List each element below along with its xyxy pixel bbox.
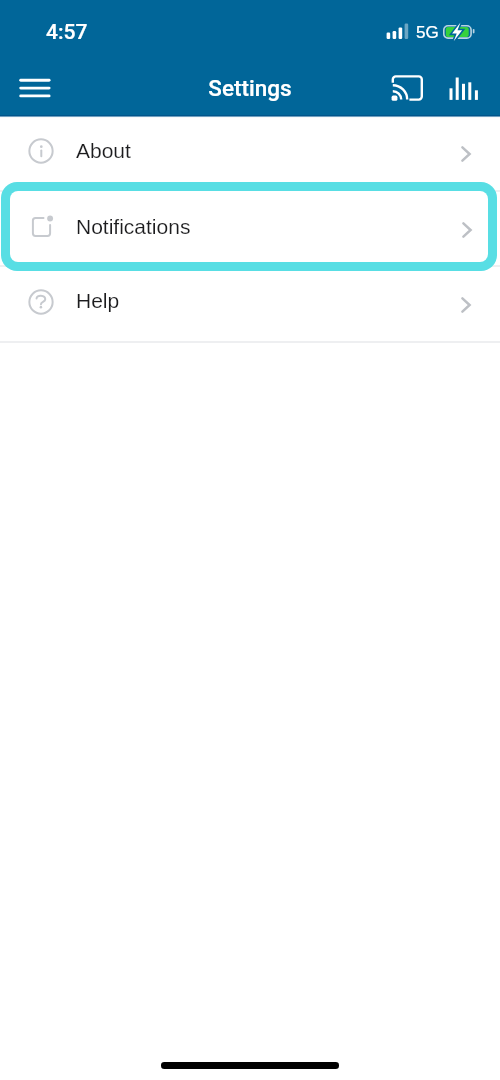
staticText: Notifications bbox=[76, 215, 191, 238]
button[interactable]: About bbox=[0, 116, 500, 192]
staticText: Help bbox=[76, 289, 120, 312]
button[interactable]: Audio levels bbox=[442, 70, 485, 106]
staticText: Settings bbox=[0, 75, 500, 101]
staticText: 5G bbox=[416, 23, 439, 42]
button[interactable]: Cast to device bbox=[384, 68, 428, 108]
staticText: About bbox=[76, 139, 131, 162]
staticText: 4:57 bbox=[46, 20, 88, 45]
button[interactable]: Notifications bbox=[0, 191, 500, 267]
button[interactable]: Open navigation menu bbox=[8, 68, 62, 108]
button[interactable]: Help bbox=[0, 267, 500, 343]
staticText: Notifications bbox=[76, 214, 191, 237]
button[interactable]: Notifications bbox=[10, 191, 488, 262]
